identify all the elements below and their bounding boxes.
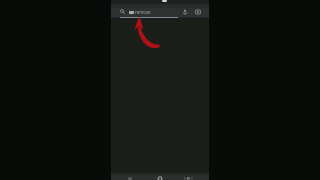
button[interactable]: remove <box>135 8 163 16</box>
button[interactable]: Recent apps <box>183 175 197 180</box>
button[interactable]: Back <box>125 175 135 180</box>
button[interactable]: Search <box>118 7 126 15</box>
button[interactable]: Google Lens <box>193 7 202 16</box>
staticText: remove <box>135 9 151 15</box>
button[interactable]: Voice search <box>180 7 189 16</box>
button[interactable]: Home <box>155 175 165 180</box>
